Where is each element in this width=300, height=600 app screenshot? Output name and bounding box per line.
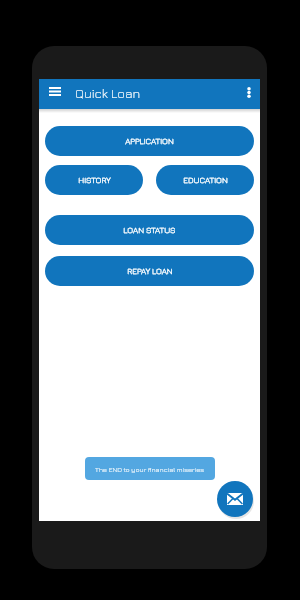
staticText: The END to your financial miseries xyxy=(95,465,205,473)
button[interactable]: APPLICATION xyxy=(45,126,254,156)
staticText: LOAN STATUS xyxy=(123,225,176,235)
button[interactable]: REPAY LOAN xyxy=(45,256,254,286)
button[interactable]: Send mail xyxy=(217,481,253,517)
button[interactable]: EDUCATION xyxy=(156,165,254,195)
staticText: REPAY LOAN xyxy=(127,266,173,276)
staticText: APPLICATION xyxy=(125,136,174,146)
button[interactable]: More options xyxy=(239,81,259,103)
button[interactable]: The END to your financial miseries xyxy=(85,457,215,480)
staticText: EDUCATION xyxy=(183,175,228,185)
staticText: HISTORY xyxy=(78,175,111,185)
button[interactable]: Menu xyxy=(44,79,66,104)
button[interactable]: LOAN STATUS xyxy=(45,215,254,245)
staticText: Quick Loan xyxy=(75,85,141,100)
button[interactable]: HISTORY xyxy=(45,165,143,195)
